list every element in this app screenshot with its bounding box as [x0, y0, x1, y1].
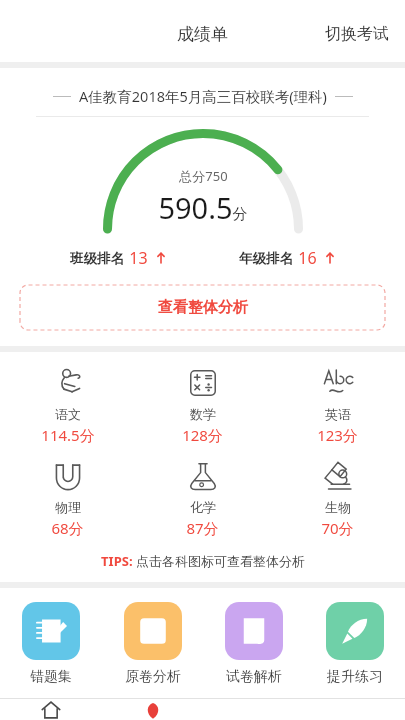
button[interactable]: 试卷解析 [203, 602, 304, 686]
button[interactable]: 查看整体分析 [20, 285, 385, 330]
staticText: 16 [298, 247, 317, 269]
staticText: 查看整体分析 [158, 298, 248, 317]
button[interactable]: 生物 [270, 455, 405, 542]
staticText: 数学 [190, 406, 216, 422]
button[interactable]: 提升练习 [304, 602, 405, 686]
button[interactable]: 化学 [135, 455, 270, 542]
staticText: TIPS: 点击各科图标可查看整体分析 [101, 552, 305, 570]
staticText: 提升练习 [327, 668, 383, 686]
button[interactable]: 切换考试 [309, 16, 405, 52]
staticText: 68分 [51, 518, 84, 538]
button[interactable]: 语文 [0, 362, 135, 449]
staticText: 87分 [186, 518, 219, 538]
staticText: 114.5分 [41, 425, 95, 445]
staticText: 128分 [182, 425, 223, 445]
staticText: A佳教育2018年5月高三百校联考(理科) [79, 86, 327, 106]
staticText: 切换考试 [325, 24, 389, 44]
staticText: 英语 [325, 406, 351, 422]
staticText: 年级排名 [239, 250, 293, 267]
button[interactable]: 数学 [135, 362, 270, 449]
button[interactable]: 物理 [0, 455, 135, 542]
staticText: 成绩单 [177, 24, 228, 45]
button[interactable]: 首页 [0, 699, 102, 720]
staticText: 试卷解析 [226, 668, 282, 686]
staticText: 生物 [325, 499, 351, 515]
staticText: 原卷分析 [125, 668, 181, 686]
staticText: 70分 [321, 518, 354, 538]
staticText: 物理 [55, 499, 81, 515]
staticText: 590.5分 [158, 188, 248, 227]
staticText: 语文 [55, 406, 81, 422]
button[interactable]: 原卷分析 [102, 602, 203, 686]
button[interactable]: 英语 [270, 362, 405, 449]
button[interactable]: 错题集 [0, 602, 102, 686]
staticText: 13 [129, 247, 148, 269]
staticText: 化学 [190, 499, 216, 515]
staticText: 123分 [317, 425, 358, 445]
staticText: 班级排名 [70, 250, 124, 267]
button[interactable]: 佳分宝 [102, 699, 203, 720]
staticText: 总分750 [179, 167, 228, 185]
staticText: 错题集 [30, 668, 72, 686]
